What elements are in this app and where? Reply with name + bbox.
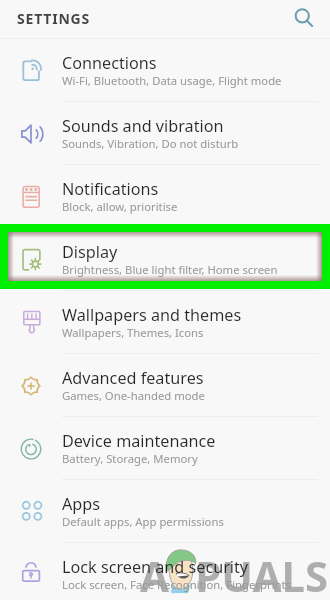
button[interactable]: Connections <box>0 39 330 102</box>
staticText: Wallpapers, Themes, Icons <box>62 325 204 340</box>
staticText: Default apps, App permissions <box>62 514 224 529</box>
staticText: Device maintenance <box>62 430 216 452</box>
button[interactable]: Device maintenance <box>0 417 330 480</box>
button[interactable]: Lock screen and security <box>0 543 330 600</box>
button[interactable]: Search <box>289 3 319 33</box>
button[interactable]: Notifications <box>0 165 330 228</box>
button[interactable]: Wallpapers and themes <box>0 291 330 354</box>
staticText: Brightness, Blue light filter, Home scre… <box>62 262 278 277</box>
staticText: Sounds, Vibration, Do not disturb <box>62 136 239 151</box>
staticText: Lock screen, Face Recognition, Fingerpri… <box>62 577 292 592</box>
staticText: SETTINGS <box>17 9 91 28</box>
staticText: Wi-Fi, Bluetooth, Data usage, Flight mod… <box>62 73 282 88</box>
staticText: Sounds and vibration <box>62 115 224 137</box>
staticText: APPUALS <box>140 547 329 600</box>
button[interactable]: Display <box>0 228 330 291</box>
staticText: Games, One-handed mode <box>62 388 205 403</box>
staticText: Advanced features <box>62 367 204 389</box>
staticText: Block, allow, prioritise <box>62 199 178 214</box>
button[interactable]: Apps <box>0 480 330 543</box>
staticText: Notifications <box>62 178 159 200</box>
staticText: Connections <box>62 52 157 74</box>
staticText: Display <box>62 241 118 263</box>
staticText: Wallpapers and themes <box>62 304 242 326</box>
staticText: Lock screen and security <box>62 556 249 578</box>
staticText: Battery, Storage, Memory <box>62 451 198 466</box>
button[interactable]: Sounds and vibration <box>0 102 330 165</box>
button[interactable]: Advanced features <box>0 354 330 417</box>
staticText: Apps <box>62 493 101 515</box>
